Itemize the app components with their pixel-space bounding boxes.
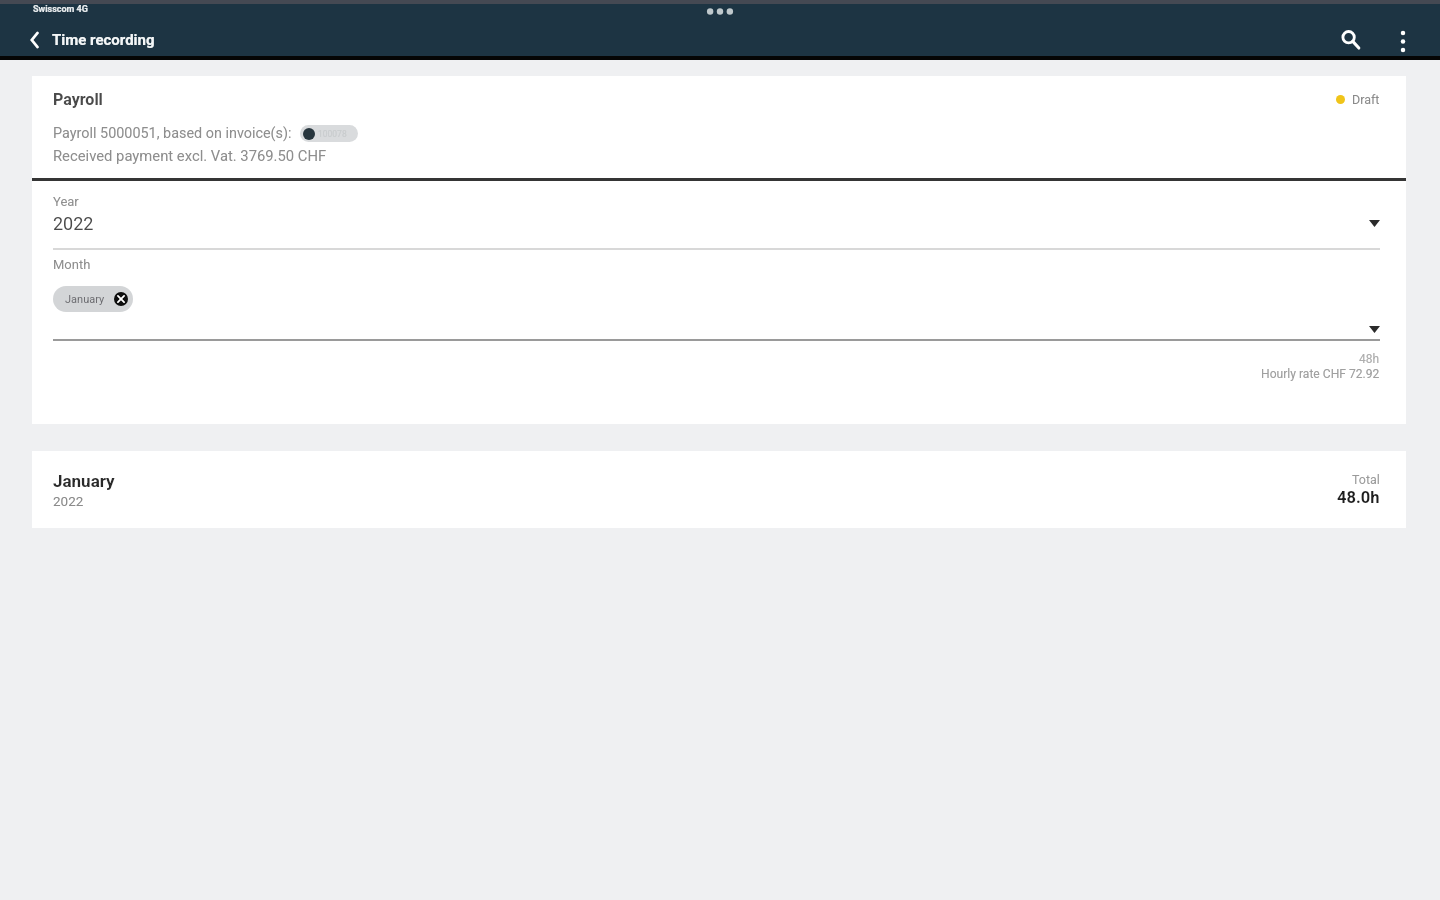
staticText: Received payment excl. Vat. 3769.50 CHF xyxy=(53,147,327,164)
staticText: 48.0h xyxy=(1337,488,1380,507)
button[interactable] xyxy=(53,326,1380,339)
button[interactable]: 100078 xyxy=(303,125,347,142)
button[interactable]: January xyxy=(32,451,1406,528)
button[interactable]: 2022 xyxy=(53,212,1380,234)
staticText: 48h xyxy=(1359,352,1380,366)
staticText: January xyxy=(53,471,115,491)
staticText: Total xyxy=(1352,472,1380,487)
staticText: Month xyxy=(53,257,91,272)
button[interactable]: January xyxy=(65,286,128,312)
staticText: Payroll 5000051, based on invoice(s): xyxy=(53,125,292,142)
button[interactable]: Search xyxy=(1329,23,1371,56)
staticText: Payroll xyxy=(53,90,103,109)
button[interactable]: More options xyxy=(1383,23,1423,56)
staticText: 2022 xyxy=(53,213,94,234)
staticText: 2022 xyxy=(53,493,84,509)
staticText: Draft xyxy=(1352,92,1380,107)
staticText: Swisscom 4G xyxy=(33,4,88,15)
button[interactable]: Back xyxy=(22,27,48,53)
staticText: 100078 xyxy=(318,129,347,139)
staticText: Time recording xyxy=(52,31,155,49)
staticText: January xyxy=(65,293,105,306)
staticText: Hourly rate CHF 72.92 xyxy=(1261,367,1380,381)
staticText: Year xyxy=(53,194,79,209)
